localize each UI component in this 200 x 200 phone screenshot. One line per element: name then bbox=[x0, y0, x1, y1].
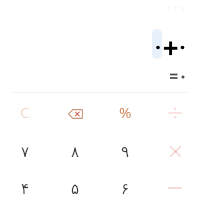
staticText: ۸ bbox=[71, 143, 80, 160]
other: Divide bbox=[169, 108, 181, 118]
other: Backspace bbox=[68, 109, 83, 119]
button[interactable]: ۵ bbox=[50, 170, 100, 200]
other: Multiply bbox=[170, 146, 181, 157]
other: Minus bbox=[169, 185, 181, 191]
button[interactable]: Backspace bbox=[50, 96, 100, 133]
button[interactable]: % bbox=[100, 96, 150, 133]
staticText: % bbox=[119, 102, 132, 122]
button[interactable]: Expression zero plus zero bbox=[150, 36, 190, 58]
button[interactable]: ۶ bbox=[100, 170, 150, 200]
button[interactable]: ۷ bbox=[0, 133, 50, 170]
staticText: ۷ bbox=[21, 143, 30, 160]
button[interactable]: Minus bbox=[150, 170, 200, 200]
staticText: ۶ bbox=[121, 180, 130, 197]
button[interactable]: ۹ bbox=[100, 133, 150, 170]
staticText: ۴ bbox=[21, 180, 30, 197]
button[interactable]: ۸ bbox=[50, 133, 100, 170]
button[interactable]: Multiply bbox=[150, 133, 200, 170]
button[interactable]: Divide bbox=[150, 96, 200, 133]
button[interactable]: ۴ bbox=[0, 170, 50, 200]
button[interactable]: C bbox=[0, 96, 50, 133]
staticText: ۹ bbox=[121, 143, 130, 160]
staticText: C bbox=[20, 102, 30, 122]
staticText: ۵ bbox=[71, 180, 80, 197]
